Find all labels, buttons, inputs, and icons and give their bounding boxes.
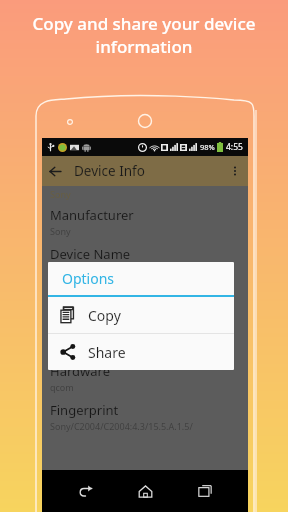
staticText: Product xyxy=(50,284,98,302)
button[interactable]: Recent apps xyxy=(188,474,222,508)
staticText: 98% xyxy=(200,142,215,152)
staticText: qcom xyxy=(50,381,74,393)
button[interactable]: Home xyxy=(128,474,162,508)
button[interactable]: Hardware xyxy=(50,362,240,393)
button[interactable]: Product xyxy=(50,284,240,315)
staticText: Copy and share your device information xyxy=(32,12,256,58)
button[interactable]: Back xyxy=(68,474,102,508)
staticText: Hardware xyxy=(50,362,110,380)
staticText: Model xyxy=(50,323,89,341)
staticText: Share xyxy=(88,343,126,362)
staticText: 4:55 xyxy=(226,141,243,153)
staticText: Fingerprint xyxy=(50,401,119,419)
button[interactable]: Share xyxy=(48,334,234,370)
staticText: Options xyxy=(62,269,115,288)
staticText: Sony xyxy=(50,225,71,237)
staticText: Sony/C2004/C2004:4.3/15.5.A.1.5/ xyxy=(50,420,193,432)
staticText: Manufacturer xyxy=(50,206,134,224)
button[interactable]: More options xyxy=(222,158,248,184)
button[interactable]: Back xyxy=(42,158,68,184)
button[interactable]: Device Name xyxy=(50,245,240,276)
button[interactable]: Manufacturer xyxy=(50,206,240,237)
staticText: C2004 xyxy=(50,342,77,354)
staticText: C2004 xyxy=(50,264,77,276)
staticText: Device Info xyxy=(74,162,145,180)
staticText: Copy xyxy=(88,306,121,325)
button[interactable]: Copy xyxy=(48,297,234,333)
button[interactable]: Model xyxy=(50,323,240,354)
staticText: Xperia xyxy=(50,303,77,315)
staticText: Sony xyxy=(50,188,71,200)
staticText: Device Name xyxy=(50,245,131,263)
